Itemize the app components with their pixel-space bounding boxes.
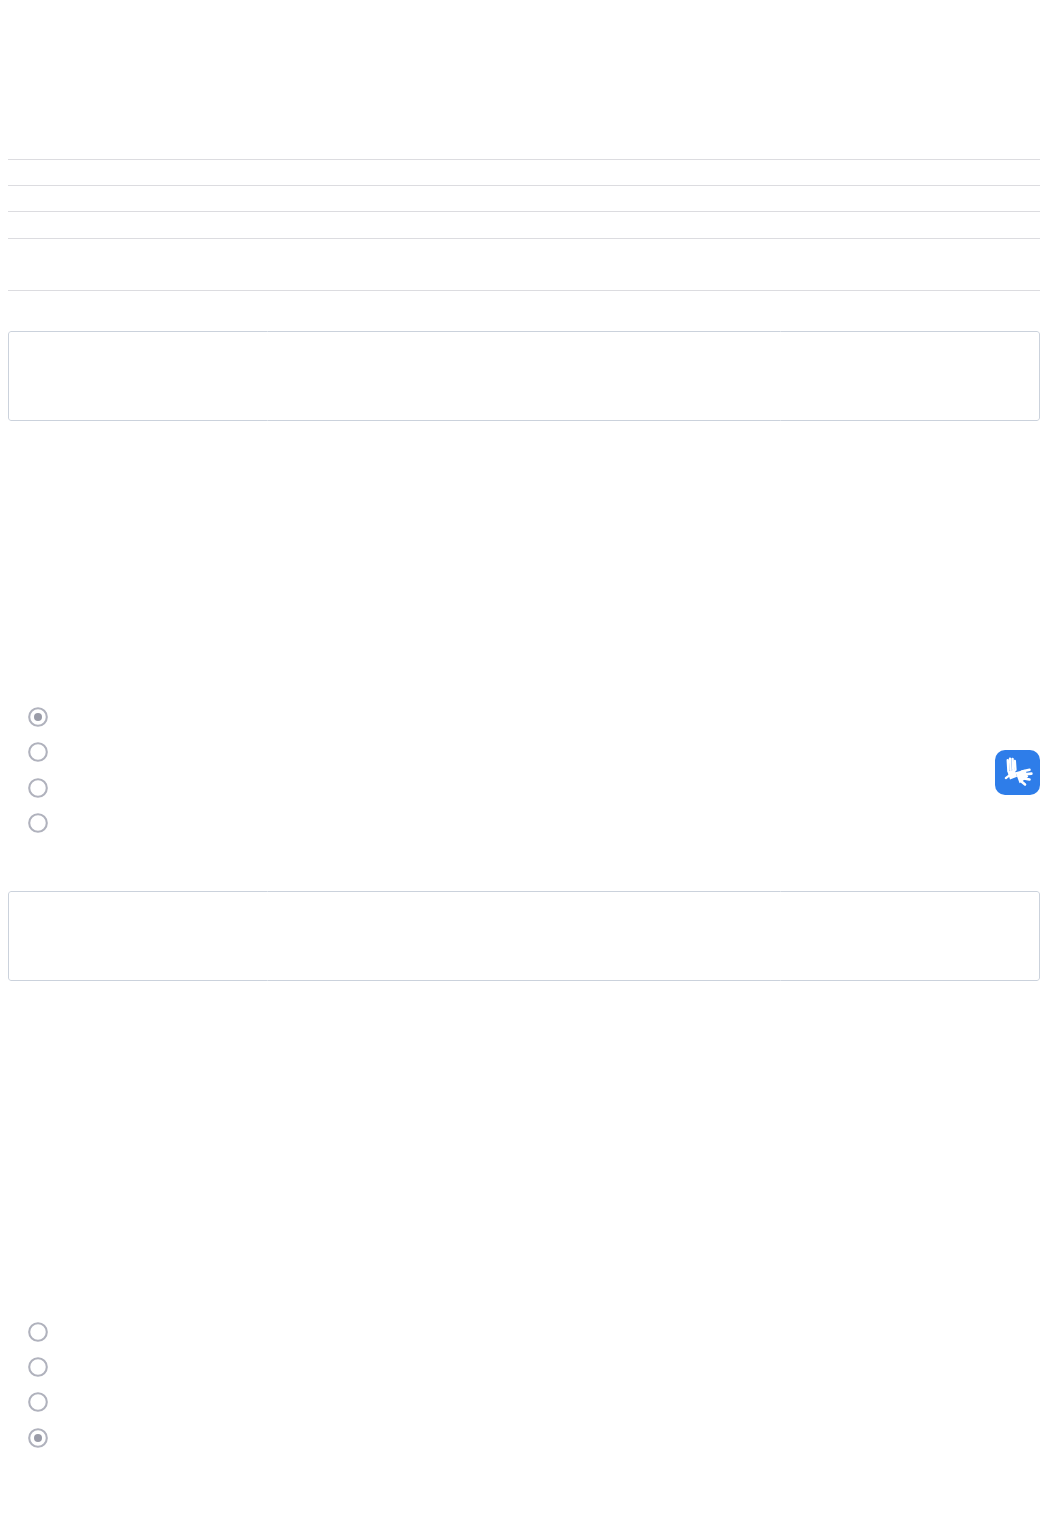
button[interactable]: Option [28, 806, 1028, 840]
button[interactable]: Option [28, 771, 1028, 805]
button[interactable]: Option [28, 735, 1028, 769]
button[interactable]: Option [28, 1350, 1028, 1384]
button[interactable]: Option [28, 1385, 1028, 1419]
button[interactable] [8, 331, 1040, 421]
button[interactable] [8, 891, 1040, 981]
button[interactable]: Selected option [28, 1421, 1028, 1455]
button[interactable]: Sign language interpreter [995, 750, 1040, 795]
button[interactable]: Selected option [28, 700, 1028, 734]
button[interactable]: Option [28, 1315, 1028, 1349]
